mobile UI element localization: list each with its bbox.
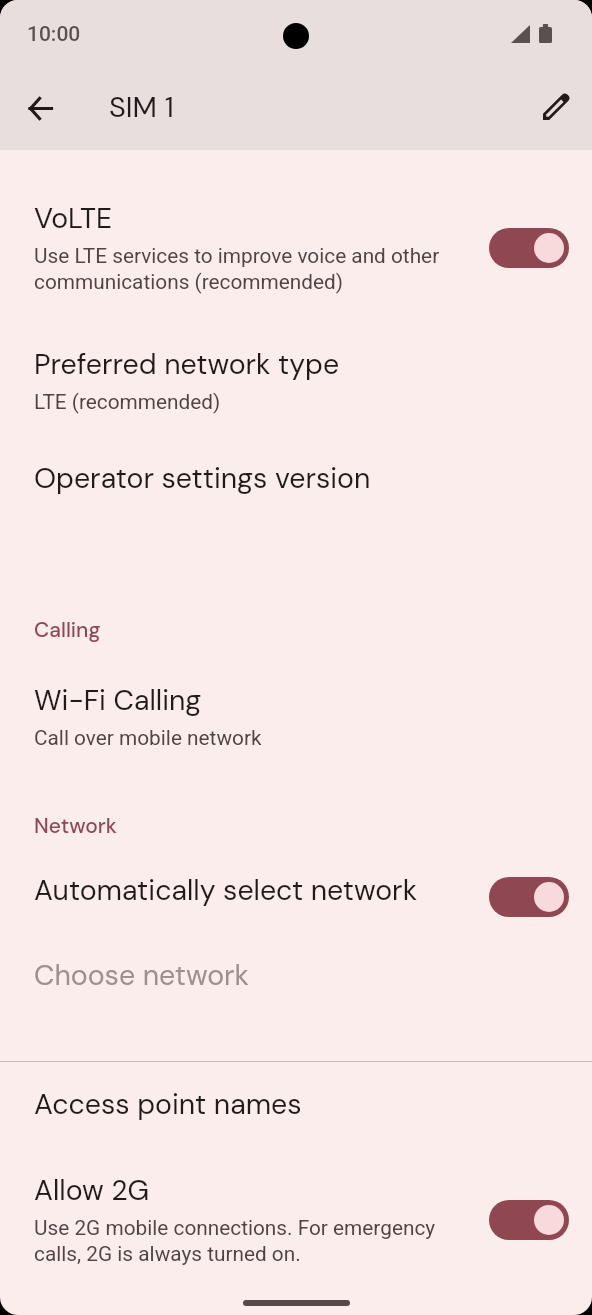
button[interactable]: Preferred network type — [0, 332, 592, 436]
button[interactable]: Access point names — [0, 1072, 592, 1132]
button[interactable]: Navigate up — [12, 80, 68, 136]
staticText: Automatically select network — [34, 872, 418, 909]
button[interactable]: Operator settings version — [0, 446, 592, 506]
staticText: Use 2G mobile connections. For emergency… — [34, 1216, 464, 1266]
button[interactable]: VoLTE — [0, 186, 592, 290]
button[interactable]: Wi-Fi Calling — [0, 668, 592, 772]
staticText: LTE (recommended) — [34, 390, 221, 414]
button[interactable]: Automatically select network, on — [489, 877, 569, 917]
staticText: Operator settings version — [34, 460, 371, 497]
staticText: Preferred network type — [34, 346, 340, 383]
staticText: Choose network — [34, 957, 249, 994]
staticText: Calling — [34, 616, 101, 643]
staticText: Access point names — [34, 1086, 302, 1123]
button[interactable]: VoLTE, on — [489, 228, 569, 268]
staticText: 10:00 — [27, 22, 81, 47]
staticText: VoLTE — [34, 200, 113, 237]
staticText: Allow 2G — [34, 1172, 150, 1209]
button[interactable]: Automatically select network — [0, 858, 592, 918]
staticText: Network — [34, 812, 117, 839]
button[interactable]: Allow 2G, on — [489, 1200, 569, 1240]
button[interactable]: Allow 2G — [0, 1158, 592, 1262]
button[interactable]: Edit — [529, 78, 585, 134]
staticText: Wi-Fi Calling — [34, 682, 202, 719]
staticText: Use LTE services to improve voice and ot… — [34, 244, 464, 294]
staticText: Call over mobile network — [34, 726, 262, 750]
staticText: SIM 1 — [109, 88, 174, 126]
button[interactable]: Choose network — [0, 943, 592, 1003]
